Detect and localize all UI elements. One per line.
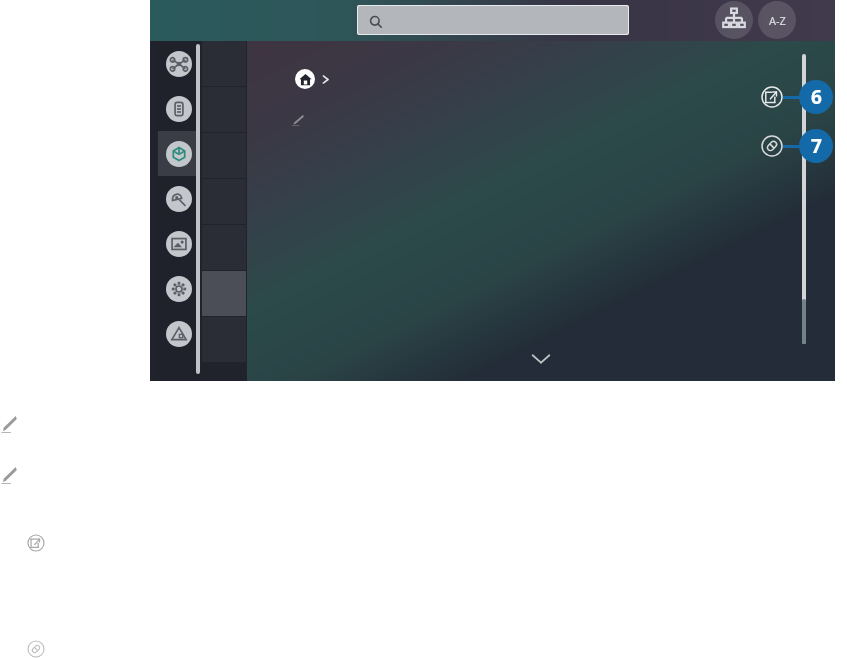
staticText: 6 xyxy=(811,84,822,110)
button[interactable]: Sitemap view xyxy=(715,1,753,39)
button[interactable]: Menu item 2 xyxy=(158,86,200,131)
button[interactable]: Search xyxy=(358,6,628,34)
button[interactable]: Home xyxy=(295,69,331,89)
button[interactable]: Copy link xyxy=(27,640,45,658)
button[interactable]: Menu item 5 xyxy=(158,221,200,266)
staticText: A-Z xyxy=(769,13,786,28)
staticText: 7 xyxy=(811,133,822,159)
button[interactable]: Open in new window xyxy=(761,86,783,108)
button[interactable]: Open in new window xyxy=(27,534,45,552)
button[interactable]: Copy link xyxy=(761,135,783,157)
button[interactable]: Menu item 3 xyxy=(158,131,200,176)
button[interactable]: A-Z xyxy=(758,1,796,39)
button[interactable]: Menu item 1 xyxy=(158,41,200,86)
button[interactable]: Menu item 6 xyxy=(158,266,200,311)
button[interactable]: Menu item 4 xyxy=(158,176,200,221)
button[interactable]: Menu item 7 xyxy=(158,311,200,356)
